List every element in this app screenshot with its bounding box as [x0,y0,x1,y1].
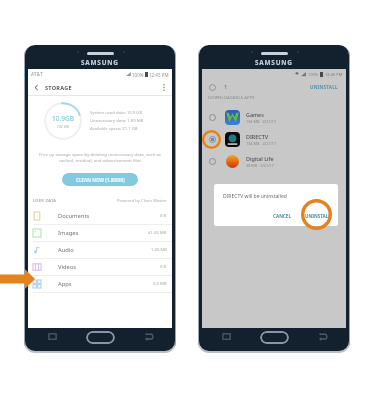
button[interactable]: Digital Life [202,150,346,172]
staticText: Powered by Clean Master [117,198,167,204]
staticText: System used data: 10.9 GB [90,110,143,116]
button[interactable]: CLEAN NOW (1.89MB) [62,173,138,186]
button[interactable]: DIRECTV [202,128,346,150]
staticText: DIRECTV will be uninstalled [223,193,287,200]
staticText: 1 [224,83,228,91]
staticText: CLEAN NOW (1.89MB) [76,177,125,183]
staticText: 1.26 MB [151,247,167,253]
staticText: 10.9GB [52,114,74,123]
staticText: 100% [308,72,319,77]
staticText: 134 MB 2/21/17 [246,119,277,124]
staticText: AT&T [31,71,43,78]
button[interactable]: Images [28,225,172,241]
staticText: DIRECTV [246,133,269,140]
button[interactable]: Home [86,331,115,344]
staticText: USER DATA [33,198,57,204]
button[interactable]: Select all [209,84,216,91]
staticText: Available space: 21.1 GB [90,126,138,132]
button[interactable]: CANCEL [271,211,293,221]
staticText: 41.33 MB [148,230,167,236]
button[interactable]: UNINSTALL [303,211,333,221]
staticText: 38 MB 2/21/17 [246,163,274,168]
staticText: Digital Life [246,155,274,162]
button[interactable]: Back [32,83,41,92]
button[interactable]: Home [260,331,289,344]
staticText: 12:45 PM [149,72,169,78]
staticText: CANCEL [273,213,291,219]
button[interactable]: More options [159,83,168,92]
staticText: 0 B [160,213,167,219]
staticText: Free up storage space by deleting unnece… [36,151,164,163]
staticText: SAMSUNG [255,58,293,67]
button[interactable]: Audio [28,242,172,258]
staticText: 134 MB 2/21/17 [246,141,277,146]
staticText: Unnecessary data: 1.89 MB [90,118,144,124]
staticText: UNINSTALL [305,213,331,219]
other: Back [144,332,153,341]
button[interactable]: Videos [28,259,172,275]
staticText: Videos [58,263,77,271]
staticText: DOWNLOADABLE APPS [208,95,255,100]
staticText: 0 B [160,264,167,270]
staticText: Apps [58,280,72,288]
staticText: Images [58,229,79,237]
button[interactable]: Apps [28,276,172,292]
staticText: 100% [132,72,144,78]
other: Recents [222,332,231,341]
other: Back [318,332,327,341]
staticText: Audio [58,246,74,254]
staticText: Documents [58,212,90,220]
button[interactable]: Games [202,106,346,128]
other: Recents [48,332,57,341]
staticText: Games [246,111,264,118]
staticText: SAMSUNG [81,58,119,67]
button[interactable]: Documents [28,208,172,224]
staticText: 12:45 PM [325,72,343,77]
staticText: 3.5 MB [153,281,167,287]
button[interactable]: UNINSTALL [308,82,340,92]
staticText: /32 GB [57,124,69,129]
staticText: UNINSTALL [310,84,338,90]
staticText: STORAGE [45,84,72,92]
